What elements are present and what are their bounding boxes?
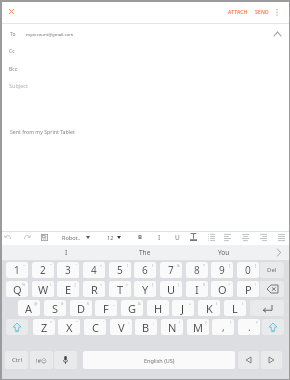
button[interactable]: E: [57, 281, 79, 297]
staticText: Q: [13, 282, 22, 297]
button[interactable]: Backspace: [260, 281, 284, 297]
button[interactable]: Shift: [262, 319, 284, 335]
button[interactable]: M: [187, 319, 209, 335]
button[interactable]: B: [133, 230, 146, 244]
button[interactable]: Undo: [1, 230, 15, 244]
button[interactable]: U: [160, 281, 182, 297]
button[interactable]: 4: [83, 262, 105, 278]
button[interactable]: R: [83, 281, 105, 297]
button[interactable]: The: [115, 245, 175, 260]
button[interactable]: A: [18, 300, 40, 316]
staticText: A: [25, 301, 33, 316]
button[interactable]: Z: [33, 319, 55, 335]
button[interactable]: Symbols: [30, 351, 53, 369]
staticText: !: [179, 320, 181, 325]
button[interactable]: H: [147, 300, 169, 316]
button[interactable]: Align right: [257, 230, 270, 244]
button[interactable]: 3: [57, 262, 79, 278]
staticText: (: [127, 263, 129, 268]
button[interactable]: D: [70, 300, 92, 316]
staticText: B: [138, 233, 142, 241]
staticText: 2: [40, 263, 46, 277]
button[interactable]: I: [36, 245, 96, 260]
button[interactable]: N: [161, 319, 183, 335]
button[interactable]: Text color: [187, 230, 200, 244]
staticText: }: [178, 282, 180, 287]
button[interactable]: Enter: [250, 300, 284, 316]
button[interactable]: Delete: [260, 262, 284, 278]
button[interactable]: SEND: [251, 4, 273, 20]
button[interactable]: K: [198, 300, 220, 316]
button[interactable]: P: [237, 281, 259, 297]
button[interactable]: I: [153, 230, 166, 244]
staticText: U: [167, 282, 176, 297]
staticText: *: [50, 320, 53, 325]
button[interactable]: English (US): [83, 351, 235, 369]
staticText: O: [218, 282, 227, 297]
button[interactable]: Redo: [20, 230, 34, 244]
button[interactable]: Bcc: [0, 61, 290, 78]
button[interactable]: Move right: [261, 351, 282, 369]
button[interactable]: Q: [6, 281, 28, 297]
staticText: :: [128, 320, 130, 325]
button[interactable]: Voice input: [54, 351, 77, 369]
staticText: ): [152, 263, 154, 268]
button[interactable]: S: [44, 300, 66, 316]
button[interactable]: 2: [32, 262, 54, 278]
button[interactable]: 0: [237, 262, 259, 278]
staticText: F: [103, 301, 109, 316]
staticText: 0: [245, 263, 251, 277]
button[interactable]: 1: [6, 262, 28, 278]
button[interactable]: Bulleted list: [205, 230, 218, 244]
button[interactable]: 12: [105, 230, 127, 244]
button[interactable]: X: [58, 319, 80, 335]
button[interactable]: Collapse recipients: [268, 27, 286, 41]
staticText: 12: [107, 234, 114, 241]
button[interactable]: 5: [109, 262, 131, 278]
button[interactable]: ,: [212, 319, 234, 335]
button[interactable]: To: [0, 26, 290, 43]
button[interactable]: 7: [160, 262, 182, 278]
button[interactable]: ATTACH: [222, 4, 254, 20]
button[interactable]: C: [84, 319, 106, 335]
staticText: 4: [91, 263, 97, 277]
button[interactable]: W: [32, 281, 54, 297]
button[interactable]: V: [110, 319, 132, 335]
staticText: ^: [228, 282, 231, 287]
staticText: Del: [267, 266, 277, 274]
button[interactable]: Insert image: [37, 230, 51, 244]
button[interactable]: .: [238, 319, 260, 335]
button[interactable]: B: [135, 319, 157, 335]
button[interactable]: Robot..: [60, 230, 94, 244]
button[interactable]: I: [186, 281, 208, 297]
button[interactable]: More options: [270, 4, 284, 20]
button[interactable]: You: [194, 245, 254, 260]
button[interactable]: Shift: [6, 319, 28, 335]
button[interactable]: Subject: [0, 78, 290, 95]
button[interactable]: J: [172, 300, 194, 316]
button[interactable]: More suggestions: [270, 245, 288, 260]
button[interactable]: Align center: [239, 230, 252, 244]
staticText: ,: [222, 320, 225, 334]
staticText: ~: [23, 263, 26, 268]
button[interactable]: T: [109, 281, 131, 297]
button[interactable]: 8: [186, 262, 208, 278]
staticText: Y: [142, 282, 149, 297]
staticText: €: [87, 301, 90, 306]
button[interactable]: L: [224, 300, 246, 316]
button[interactable]: G: [121, 300, 143, 316]
button[interactable]: Move left: [238, 351, 259, 369]
button[interactable]: Ctrl: [5, 351, 28, 369]
staticText: You: [218, 248, 230, 257]
button[interactable]: Cc: [0, 43, 290, 60]
button[interactable]: Sent from my Sprint Tablet: [0, 96, 290, 226]
button[interactable]: F: [95, 300, 117, 316]
button[interactable]: Close: [3, 3, 19, 19]
button[interactable]: 6: [134, 262, 156, 278]
button[interactable]: Justify: [275, 230, 288, 244]
button[interactable]: Align left: [221, 230, 234, 244]
button[interactable]: 9: [211, 262, 233, 278]
button[interactable]: Y: [134, 281, 156, 297]
button[interactable]: O: [211, 281, 233, 297]
button[interactable]: U: [171, 230, 184, 244]
